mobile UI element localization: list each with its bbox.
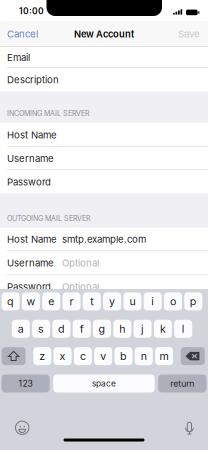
staticText: n	[141, 350, 147, 362]
staticText: space	[92, 378, 116, 388]
staticText: k	[160, 322, 166, 335]
staticText: c	[80, 350, 86, 362]
staticText: g	[98, 322, 105, 335]
button[interactable]: Host Name	[0, 123, 208, 147]
button[interactable]: 123	[2, 374, 50, 392]
staticText: Username	[7, 257, 54, 269]
button[interactable]: Dictation	[179, 418, 199, 438]
button[interactable]: w	[22, 292, 40, 310]
button[interactable]: c	[74, 347, 92, 365]
button[interactable]: Host Name	[0, 228, 208, 251]
staticText: d	[58, 322, 65, 335]
staticText: 123	[19, 378, 33, 389]
staticText: l	[182, 322, 185, 335]
button[interactable]: Description	[0, 68, 208, 91]
button[interactable]: Save	[170, 21, 208, 47]
button[interactable]: o	[164, 292, 182, 310]
staticText: e	[48, 295, 54, 308]
button[interactable]: n	[135, 347, 153, 365]
button[interactable]: Cancel	[0, 21, 45, 47]
staticText: u	[129, 295, 135, 308]
staticText: q	[7, 295, 14, 308]
button[interactable]: space	[53, 374, 155, 392]
button[interactable]: b	[114, 347, 132, 365]
staticText: Optional	[62, 257, 99, 269]
button[interactable]: d	[52, 320, 70, 338]
staticText: v	[100, 350, 106, 362]
staticText: Password	[7, 176, 51, 188]
button[interactable]: Delete	[181, 347, 205, 365]
staticText: Cancel	[7, 28, 38, 40]
button[interactable]: k	[154, 320, 172, 338]
button[interactable]: Emoji keyboard	[12, 418, 32, 438]
button[interactable]: r	[62, 292, 80, 310]
staticText: s	[38, 322, 44, 335]
button[interactable]: Password	[0, 275, 208, 298]
staticText: return	[170, 378, 194, 389]
button[interactable]: x	[54, 347, 72, 365]
button[interactable]: t	[83, 292, 101, 310]
staticText: OUTGOING MAIL SERVER	[7, 214, 91, 223]
button[interactable]: s	[32, 320, 50, 338]
button[interactable]: y	[103, 292, 121, 310]
staticText: New Account	[74, 28, 134, 40]
staticText: Email	[7, 52, 30, 63]
button[interactable]: Email	[0, 47, 208, 68]
staticText: h	[119, 322, 125, 335]
button[interactable]: p	[184, 292, 202, 310]
button[interactable]: h	[113, 320, 131, 338]
button[interactable]: i	[144, 292, 162, 310]
staticText: m	[160, 350, 169, 362]
staticText: Save	[178, 28, 200, 40]
button[interactable]: v	[94, 347, 112, 365]
staticText: Description	[7, 74, 59, 85]
button[interactable]: Shift	[2, 347, 26, 365]
staticText: smtp.example.com	[62, 233, 146, 245]
staticText: x	[60, 350, 66, 362]
staticText: i	[151, 295, 154, 308]
staticText: 10:00	[19, 6, 44, 16]
button[interactable]: Username	[0, 147, 208, 170]
staticText: w	[26, 295, 35, 308]
staticText: a	[18, 322, 24, 335]
button[interactable]: u	[123, 292, 141, 310]
staticText: o	[170, 295, 176, 308]
staticText: r	[69, 295, 73, 308]
button[interactable]: l	[174, 320, 192, 338]
staticText: j	[141, 322, 144, 335]
staticText: p	[190, 295, 197, 308]
button[interactable]: j	[134, 320, 152, 338]
staticText: Optional	[62, 281, 99, 292]
button[interactable]: g	[93, 320, 111, 338]
button[interactable]: f	[73, 320, 91, 338]
staticText: INCOMING MAIL SERVER	[7, 109, 90, 118]
button[interactable]: a	[12, 320, 30, 338]
button[interactable]: return	[158, 374, 206, 392]
staticText: z	[39, 350, 45, 362]
staticText: f	[80, 322, 84, 335]
button[interactable]: Password	[0, 170, 208, 194]
staticText: Username	[7, 153, 54, 164]
button[interactable]: Username	[0, 251, 208, 275]
staticText: b	[120, 350, 127, 362]
button[interactable]: z	[33, 347, 51, 365]
staticText: Host Name	[7, 129, 57, 141]
staticText: Password	[7, 281, 51, 292]
button[interactable]: m	[155, 347, 173, 365]
staticText: t	[90, 295, 93, 308]
button[interactable]: e	[42, 292, 60, 310]
staticText: Host Name	[7, 233, 57, 245]
staticText: y	[109, 295, 115, 308]
button[interactable]: q	[2, 292, 20, 310]
